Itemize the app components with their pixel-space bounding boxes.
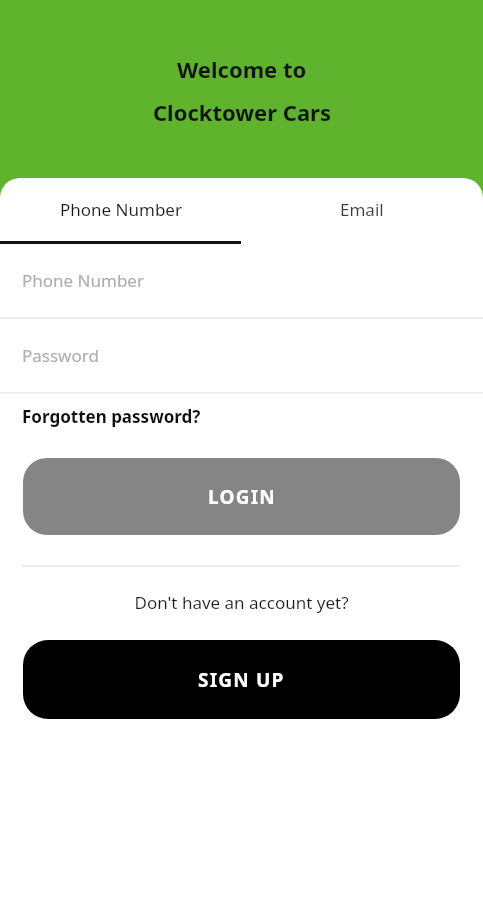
staticText: Email: [340, 198, 384, 221]
button[interactable]: Forgotten password?: [0, 394, 483, 438]
button[interactable]: Phone Number: [0, 178, 241, 241]
button[interactable]: LOGIN: [23, 458, 460, 535]
button[interactable]: Phone Number: [0, 244, 483, 317]
staticText: Welcome to: [177, 54, 307, 84]
button[interactable]: SIGN UP: [23, 640, 460, 719]
staticText: Password: [22, 344, 99, 367]
button[interactable]: Email: [241, 178, 483, 241]
staticText: Phone Number: [22, 269, 144, 292]
staticText: Phone Number: [60, 198, 182, 221]
staticText: Clocktower Cars: [153, 97, 331, 127]
staticText: LOGIN: [208, 484, 276, 510]
staticText: Forgotten password?: [22, 405, 201, 428]
staticText: Don't have an account yet?: [134, 591, 349, 614]
button[interactable]: Password: [0, 319, 483, 392]
staticText: SIGN UP: [198, 667, 285, 693]
